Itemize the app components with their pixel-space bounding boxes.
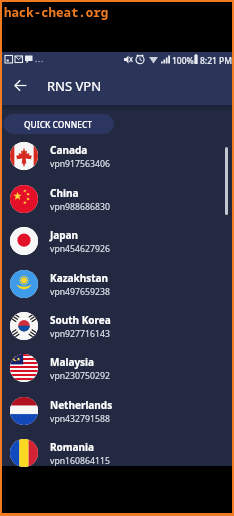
staticText: QUICK CONNECT (24, 119, 93, 130)
staticText: vpn917563406 (50, 158, 110, 170)
staticText: Japan (50, 228, 79, 242)
staticText: vpn160864115 (50, 455, 110, 467)
staticText: vpn230750292 (50, 370, 110, 382)
button[interactable]: Canada (2, 135, 232, 177)
staticText: Romania (50, 440, 95, 454)
staticText: China (50, 186, 79, 200)
staticText: vpn927716143 (50, 328, 110, 340)
staticText: Kazakhstan (50, 271, 109, 285)
staticText: RNS VPN (47, 77, 102, 95)
staticText: vpn497659238 (50, 286, 110, 298)
staticText: vpn988686830 (50, 201, 110, 213)
button[interactable]: Netherlands (2, 390, 232, 432)
staticText: vpn454627926 (50, 243, 110, 255)
staticText: South Korea (50, 313, 111, 327)
button[interactable]: South Korea (2, 305, 232, 347)
staticText: 8:21 PM (200, 55, 233, 67)
button[interactable]: Kazakhstan (2, 263, 232, 305)
button[interactable]: Back (6, 71, 34, 99)
staticText: Canada (50, 143, 88, 157)
staticText: hack-cheat.org (4, 4, 109, 21)
staticText: Netherlands (50, 398, 113, 412)
staticText: 100% (172, 55, 194, 67)
button[interactable]: China (2, 178, 232, 220)
button[interactable]: Japan (2, 220, 232, 262)
staticText: Malaysia (50, 355, 95, 369)
button[interactable]: QUICK CONNECT (3, 114, 114, 134)
button[interactable]: Malaysia (2, 347, 232, 389)
button[interactable]: Romania (2, 432, 232, 474)
staticText: vpn432791588 (50, 413, 110, 425)
